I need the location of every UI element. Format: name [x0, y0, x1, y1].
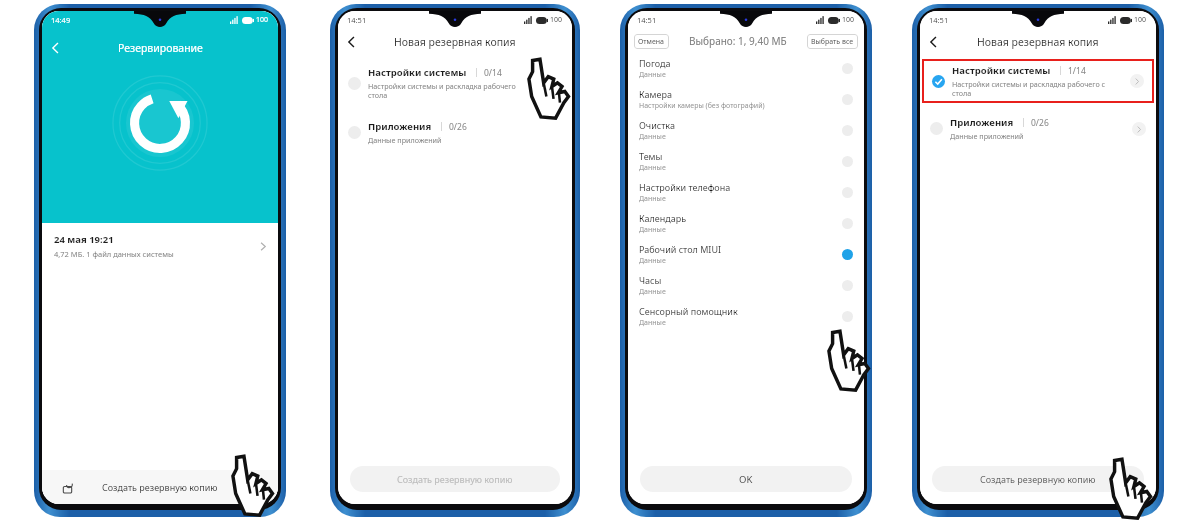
button[interactable]: 24 мая 19:21	[42, 223, 278, 269]
staticText: 24 мая 19:21	[54, 233, 114, 246]
staticText: 0/14	[484, 67, 502, 79]
staticText: 1/14	[1068, 65, 1086, 77]
staticText: 100	[256, 15, 269, 25]
staticText: Резервирование	[118, 41, 203, 55]
staticText: Создать резервную копию	[397, 473, 513, 485]
staticText: 14:49	[51, 15, 71, 25]
staticText: 100	[1134, 15, 1147, 25]
staticText: Отмена	[638, 37, 665, 47]
staticText: 0/26	[1031, 117, 1049, 129]
staticText: Данные	[639, 225, 666, 235]
staticText: Настройки системы	[368, 66, 467, 79]
button[interactable]: Сенсорный помощник	[628, 305, 864, 328]
staticText: Настройки телефона	[639, 181, 731, 193]
staticText: Данные приложений	[368, 135, 442, 145]
staticText: Настройки системы и раскладка рабочего с…	[368, 81, 516, 100]
staticText: Данные приложений	[950, 131, 1024, 141]
button[interactable]: Календарь	[628, 212, 864, 235]
button[interactable]: Unlock	[56, 476, 78, 498]
button[interactable]: Back	[338, 29, 364, 55]
button[interactable]: Темы	[628, 150, 864, 173]
button[interactable]: Back	[920, 29, 946, 55]
staticText: Данные	[639, 70, 666, 80]
staticText: Приложения	[368, 120, 432, 133]
staticText: Сенсорный помощник	[639, 305, 738, 317]
button[interactable]: Настройки системы	[922, 59, 1154, 103]
button[interactable]: Рабочий стол MIUI	[628, 243, 864, 266]
staticText: Новая резервная копия	[977, 35, 1099, 49]
staticText: Выбрано: 1, 9,40 МБ	[689, 34, 787, 48]
staticText: 100	[550, 15, 563, 25]
staticText: Данные	[639, 256, 666, 266]
button[interactable]: Отмена	[634, 34, 669, 49]
button[interactable]: Приложения	[338, 115, 572, 150]
staticText: Камера	[639, 88, 672, 100]
button[interactable]: Настройки телефона	[628, 181, 864, 204]
button[interactable]: Выбрать все	[807, 34, 858, 49]
button[interactable]: Back	[42, 36, 68, 60]
button[interactable]: Создать резервную копию	[932, 466, 1144, 492]
button[interactable]: Погода	[628, 57, 864, 80]
staticText: Очистка	[639, 119, 675, 131]
staticText: Новая резервная копия	[394, 35, 516, 49]
staticText: 4,72 МБ. 1 файл данных системы	[54, 249, 174, 259]
staticText: Рабочий стол MIUI	[639, 243, 722, 255]
staticText: Часы	[639, 274, 662, 286]
staticText: Выбрать все	[811, 37, 854, 47]
staticText: OK	[739, 473, 753, 486]
staticText: Приложения	[950, 116, 1014, 129]
staticText: 100	[842, 15, 855, 25]
button[interactable]: Настройки системы	[338, 61, 572, 105]
button[interactable]: Очистка	[628, 119, 864, 142]
staticText: 0/26	[449, 121, 467, 133]
button[interactable]: Часы	[628, 274, 864, 297]
staticText: Данные	[639, 194, 666, 204]
staticText: 14:51	[929, 15, 949, 25]
staticText: Настройки системы	[952, 64, 1051, 77]
staticText: Темы	[639, 150, 663, 162]
staticText: Настройки системы и раскладка рабочего с…	[952, 79, 1106, 98]
button[interactable]: OK	[640, 466, 852, 492]
staticText: Календарь	[639, 212, 687, 224]
staticText: Данные	[639, 318, 666, 328]
button[interactable]: Создать резервную копию	[78, 470, 242, 504]
staticText: Погода	[639, 57, 671, 69]
staticText: Данные	[639, 287, 666, 297]
staticText: Настройки камеры (без фотографий)	[639, 101, 765, 111]
button[interactable]: Создать резервную копию	[350, 466, 560, 492]
staticText: 14:51	[637, 15, 657, 25]
staticText: Данные	[639, 163, 666, 173]
staticText: Создать резервную копию	[980, 473, 1096, 485]
staticText: Создать резервную копию	[102, 481, 218, 493]
button[interactable]: Камера	[628, 88, 864, 111]
staticText: Данные	[639, 132, 666, 142]
staticText: 14:51	[347, 15, 367, 25]
button[interactable]: Приложения	[920, 111, 1156, 146]
